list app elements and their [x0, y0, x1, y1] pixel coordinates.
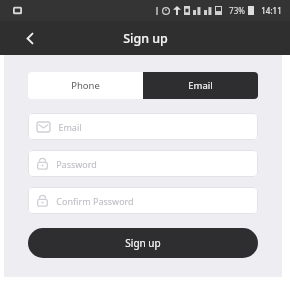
staticText: Sign up — [123, 30, 168, 47]
button[interactable]: Email — [28, 113, 258, 140]
staticText: Confirm Password — [56, 195, 134, 207]
button[interactable]: Password — [28, 150, 258, 177]
button[interactable]: Phone — [28, 72, 143, 99]
button[interactable]: Back — [18, 26, 42, 50]
staticText: Sign up — [125, 236, 161, 250]
staticText: Email — [188, 79, 213, 92]
staticText: 73% — [229, 5, 245, 16]
button[interactable]: Email — [143, 72, 258, 99]
button[interactable]: Sign up — [28, 228, 258, 258]
staticText: Password — [56, 158, 97, 170]
staticText: Phone — [71, 79, 100, 92]
staticText: Email — [58, 121, 82, 133]
staticText: 14:11 — [261, 5, 282, 16]
button[interactable]: Confirm Password — [28, 187, 258, 214]
